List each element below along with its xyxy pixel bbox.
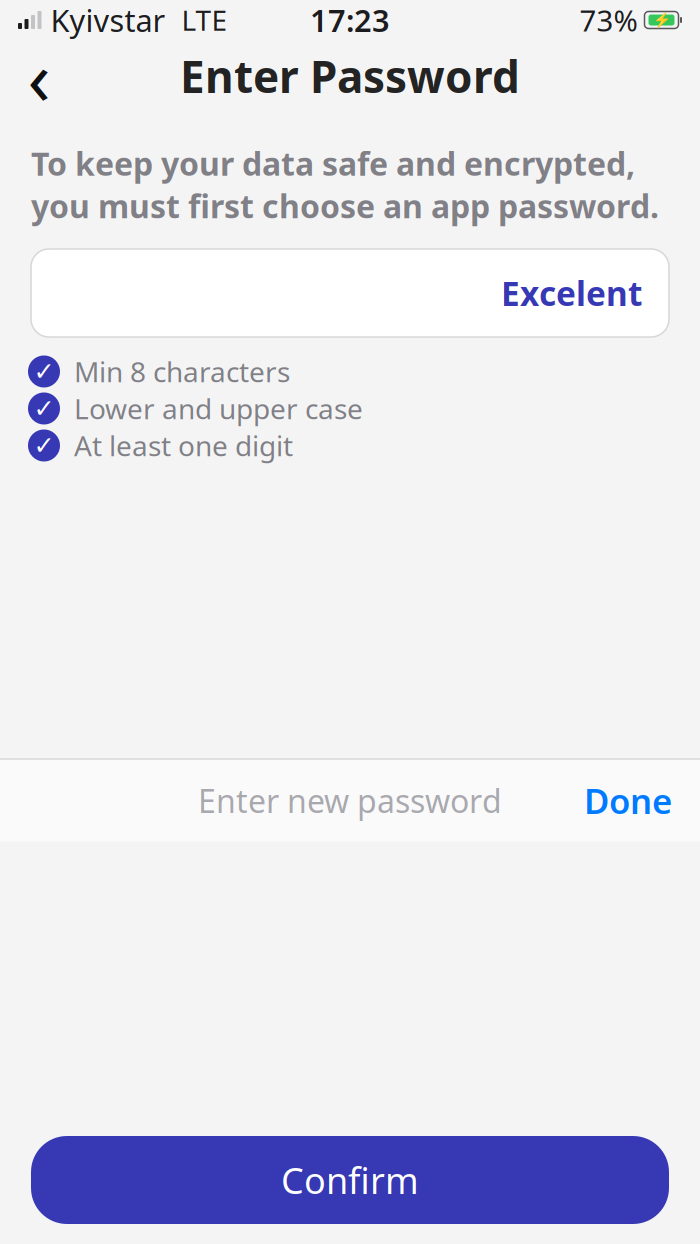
staticText: 17:23 (310, 0, 390, 40)
staticText: Confirm (281, 1156, 419, 1204)
staticText: Excelent (501, 271, 642, 315)
staticText: Kyivstar (50, 0, 165, 40)
staticText: At least one digit (74, 427, 293, 464)
staticText: Lower and upper case (74, 390, 363, 427)
staticText: ✓ (33, 394, 54, 423)
staticText: ✓ (33, 431, 54, 460)
staticText: LTE (181, 1, 227, 39)
staticText: Enter Password (180, 47, 520, 105)
button[interactable]: Back (8, 45, 70, 107)
staticText: ✓ (33, 357, 54, 386)
staticText: Done (584, 777, 672, 823)
staticText: ‹ (27, 26, 50, 126)
staticText: ⚡ (652, 12, 670, 28)
button[interactable]: Done (572, 769, 684, 831)
staticText: To keep your data safe and encrypted, yo… (31, 142, 659, 227)
staticText: 73% (579, 0, 637, 39)
staticText: Min 8 characters (74, 353, 290, 390)
button[interactable]: Confirm (31, 1136, 669, 1224)
staticText: Enter new password (198, 779, 502, 822)
